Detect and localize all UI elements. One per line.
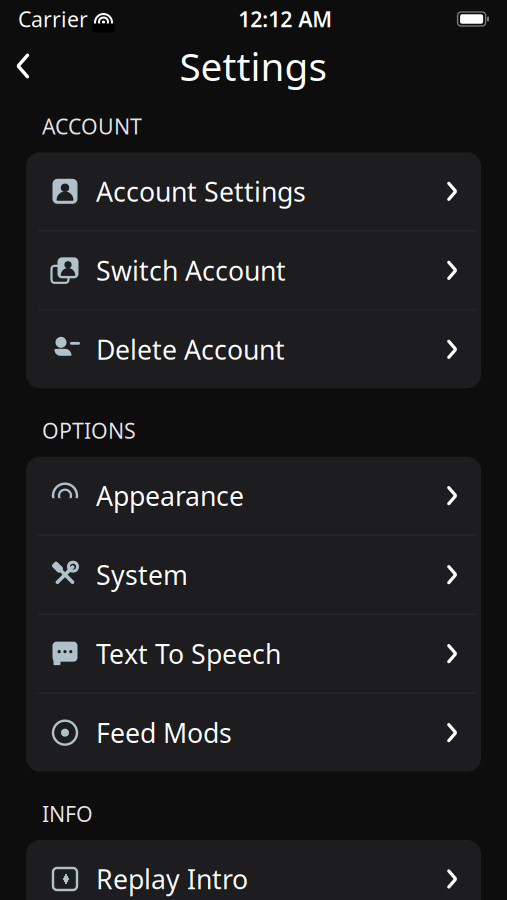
staticText: Replay Intro bbox=[96, 861, 248, 897]
button[interactable]: Delete Account bbox=[26, 310, 481, 388]
staticText: Appearance bbox=[96, 478, 244, 513]
button[interactable]: Text To Speech bbox=[26, 615, 481, 693]
button[interactable]: Replay Intro bbox=[26, 840, 481, 900]
staticText: Delete Account bbox=[96, 332, 285, 367]
staticText: 12:12 AM bbox=[238, 5, 332, 33]
staticText: Carrier bbox=[18, 5, 88, 33]
staticText: Text To Speech bbox=[96, 636, 281, 671]
button[interactable]: System bbox=[26, 536, 481, 614]
button[interactable]: Back bbox=[0, 42, 46, 90]
staticText: ACCOUNT bbox=[42, 112, 142, 140]
staticText: Account Settings bbox=[96, 174, 306, 209]
button[interactable]: Appearance bbox=[26, 457, 481, 535]
staticText: Settings bbox=[179, 40, 327, 92]
button[interactable]: Switch Account bbox=[26, 231, 481, 309]
staticText: Switch Account bbox=[96, 253, 286, 288]
staticText: System bbox=[96, 557, 188, 592]
staticText: Feed Mods bbox=[96, 715, 232, 750]
staticText: OPTIONS bbox=[42, 416, 136, 445]
staticText: INFO bbox=[42, 800, 93, 828]
button[interactable]: Account Settings bbox=[26, 152, 481, 230]
button[interactable]: Feed Mods bbox=[26, 694, 481, 772]
